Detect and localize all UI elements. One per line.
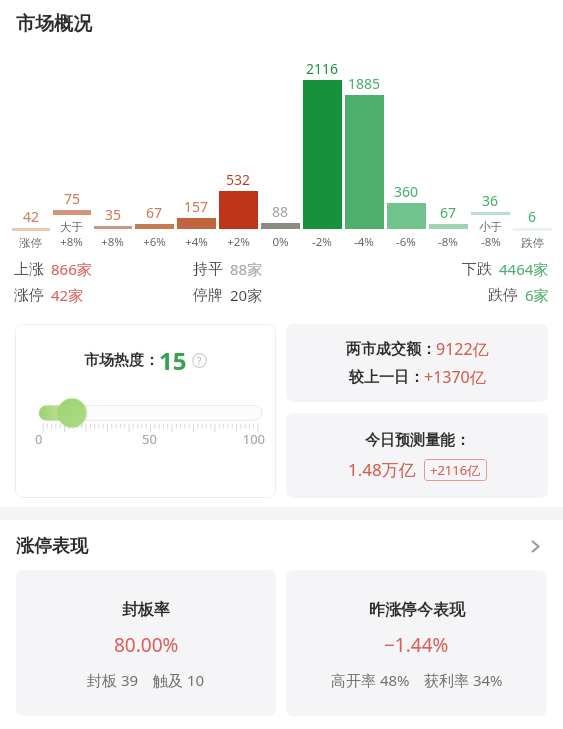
staticText: 20家: [230, 285, 263, 305]
staticText: ?: [197, 354, 202, 368]
staticText: +2%: [227, 234, 250, 250]
staticText: 持平: [193, 260, 223, 279]
button[interactable]: 封板率: [16, 570, 276, 716]
staticText: 获利率 34%: [424, 670, 503, 690]
staticText: 360: [394, 182, 419, 201]
staticText: +1370亿: [424, 366, 486, 388]
staticText: 50: [111, 430, 188, 448]
staticText: 6家: [525, 285, 549, 305]
staticText: -8%: [481, 234, 501, 250]
staticText: +6%: [143, 234, 166, 250]
staticText: 停牌: [193, 286, 223, 305]
staticText: -2%: [312, 234, 332, 250]
staticText: 532: [226, 170, 251, 189]
staticText: 42家: [51, 285, 84, 305]
staticText: 1.48万亿: [348, 458, 416, 481]
staticText: 80.00%: [114, 632, 179, 658]
staticText: 高开率 48%: [331, 670, 410, 690]
staticText: -6%: [396, 234, 416, 250]
staticText: +2116亿: [430, 461, 481, 479]
button[interactable]: 昨涨停今表现: [286, 570, 547, 716]
staticText: 88: [272, 202, 289, 221]
staticText: 市场热度：: [84, 351, 159, 370]
button[interactable]: 市场热度说明: [192, 353, 207, 368]
staticText: 4464家: [499, 259, 549, 279]
staticText: 866家: [51, 259, 92, 279]
staticText: 9122亿: [436, 338, 489, 360]
staticText: −1.44%: [384, 632, 449, 658]
staticText: 小于: [479, 220, 502, 234]
staticText: 42: [23, 207, 40, 226]
button[interactable]: 市场热度：: [15, 324, 276, 498]
staticText: +8%: [101, 234, 124, 250]
staticText: +8%: [60, 234, 83, 250]
staticText: -8%: [438, 234, 458, 250]
staticText: 100: [188, 430, 265, 448]
staticText: 下跌: [462, 260, 492, 279]
staticText: 昨涨停今表现: [369, 600, 465, 620]
staticText: 涨停: [19, 236, 42, 250]
staticText: 封板率: [122, 600, 170, 620]
staticText: 67: [146, 203, 163, 222]
staticText: 涨停: [14, 286, 44, 305]
staticText: 88家: [230, 259, 263, 279]
button[interactable]: 查看涨停表现详情: [520, 531, 550, 561]
staticText: 0: [35, 430, 111, 448]
staticText: 2116: [306, 59, 339, 78]
staticText: 大于: [60, 220, 83, 234]
staticText: 较上一日：: [349, 368, 424, 387]
button[interactable]: 两市成交额：: [286, 324, 548, 402]
button[interactable]: 今日预测量能：: [286, 413, 548, 498]
staticText: 跌停: [488, 286, 518, 305]
staticText: 今日预测量能：: [365, 431, 470, 450]
staticText: 跌停: [521, 236, 544, 250]
staticText: +4%: [185, 234, 208, 250]
staticText: 35: [105, 205, 122, 224]
staticText: 涨停表现: [16, 535, 88, 558]
staticText: 上涨: [14, 260, 44, 279]
staticText: 1885: [348, 74, 381, 93]
staticText: 封板 39: [87, 670, 139, 690]
staticText: 67: [440, 203, 457, 222]
staticText: -4%: [354, 234, 374, 250]
staticText: 两市成交额：: [346, 340, 436, 359]
staticText: 0%: [272, 234, 289, 250]
staticText: 36: [482, 191, 499, 210]
staticText: 75: [64, 189, 81, 208]
staticText: 15: [159, 344, 187, 377]
staticText: 157: [184, 197, 209, 216]
staticText: 触及 10: [153, 670, 205, 690]
staticText: 6: [528, 207, 537, 226]
staticText: 市场概况: [16, 12, 92, 36]
